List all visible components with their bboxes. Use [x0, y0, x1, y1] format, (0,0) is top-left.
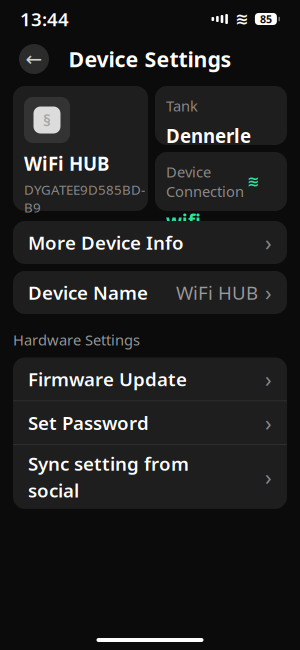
button[interactable]: Device Name [13, 271, 287, 314]
staticText: Hardware Settings [13, 330, 140, 349]
button[interactable]: More Device Info [13, 221, 287, 264]
staticText: social [28, 478, 79, 503]
staticText: › [265, 365, 272, 393]
staticText: More Device Info [28, 230, 184, 255]
staticText: › [265, 278, 272, 307]
staticText: WiFi HUB [176, 280, 258, 305]
staticText: Tank [166, 96, 198, 115]
button[interactable]: Set Password [13, 401, 287, 444]
staticText: 85 [260, 12, 272, 26]
staticText: § [43, 109, 51, 131]
button[interactable]: Firmware Update [13, 357, 287, 400]
staticText: › [265, 408, 272, 437]
staticText: Device Name [28, 280, 148, 305]
staticText: › [265, 228, 272, 257]
staticText: wifi [166, 209, 201, 234]
staticText: Firmware Update [28, 367, 187, 391]
staticText: 13:44 [20, 7, 69, 31]
staticText: WiFi HUB [24, 151, 109, 176]
button[interactable]: Back [19, 44, 49, 74]
staticText: ≋ [247, 173, 259, 190]
staticText: Sync setting from [28, 451, 189, 476]
staticText: › [265, 463, 272, 491]
staticText: Dennerle Nan... [166, 123, 251, 173]
button[interactable]: Sync setting from [13, 445, 287, 509]
staticText: ← [25, 48, 42, 70]
staticText: Device Settings [68, 45, 231, 73]
staticText: DYGATEE9D585BDB9 [24, 181, 145, 216]
staticText: C9 [24, 216, 40, 234]
staticText: Device Connection [166, 162, 244, 201]
staticText: Set Password [28, 410, 149, 435]
staticText: ≋ [235, 10, 248, 28]
